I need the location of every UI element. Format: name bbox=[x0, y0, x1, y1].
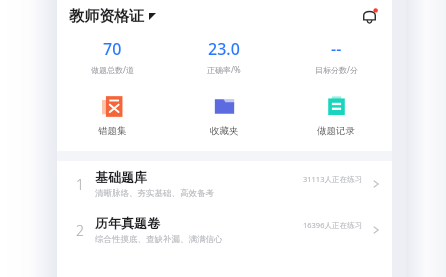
staticText: 16396人正在练习 bbox=[303, 220, 362, 230]
button[interactable]: -- bbox=[280, 38, 392, 75]
staticText: 做题总数/道 bbox=[91, 64, 134, 75]
staticText: 收藏夹 bbox=[210, 125, 239, 137]
staticText: 2 bbox=[76, 221, 84, 240]
staticText: 教师资格证 bbox=[69, 7, 144, 26]
staticText: 历年真题卷 bbox=[95, 215, 160, 231]
button[interactable]: 收藏夹 bbox=[168, 91, 280, 139]
button[interactable]: 23.0 bbox=[168, 38, 280, 75]
staticText: 1 bbox=[76, 175, 84, 194]
staticText: 70 bbox=[103, 38, 122, 60]
staticText: -- bbox=[331, 38, 342, 60]
button[interactable]: 70 bbox=[57, 38, 168, 75]
staticText: 清晰脉络、夯实基础、高效备考 bbox=[95, 188, 214, 199]
staticText: 做题记录 bbox=[317, 125, 355, 137]
staticText: 错题集 bbox=[98, 125, 127, 137]
staticText: 31113人正在练习 bbox=[303, 174, 362, 184]
button[interactable]: 2 bbox=[57, 207, 392, 253]
staticText: 正确率/% bbox=[207, 64, 241, 75]
staticText: 23.0 bbox=[208, 38, 240, 60]
button[interactable]: 错题集 bbox=[57, 91, 168, 139]
staticText: 基础题库 bbox=[95, 169, 147, 185]
button[interactable]: 做题记录 bbox=[280, 91, 392, 139]
staticText: 目标分数/分 bbox=[315, 64, 358, 75]
button[interactable]: 教师资格证 bbox=[69, 5, 156, 28]
button[interactable]: Notifications bbox=[356, 3, 382, 29]
staticText: 综合性摸底、查缺补漏、满满信心 bbox=[95, 234, 223, 245]
button[interactable]: 1 bbox=[57, 161, 392, 207]
